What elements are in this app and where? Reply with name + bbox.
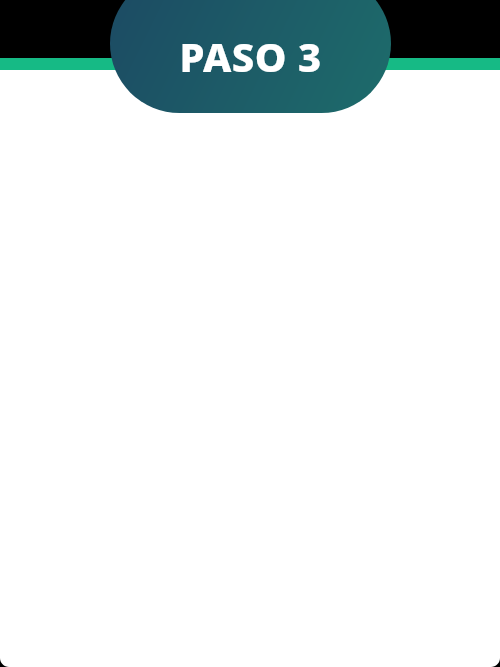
staticText: PASO 3: [179, 29, 322, 83]
button[interactable]: PASO 3: [110, 0, 391, 113]
